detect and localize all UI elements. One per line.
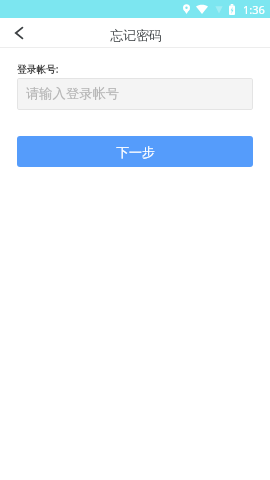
- staticText: 1:36: [243, 2, 265, 17]
- button[interactable]: 请输入登录帐号: [17, 78, 253, 110]
- staticText: 下一步: [116, 144, 155, 160]
- button[interactable]: Back: [0, 18, 37, 48]
- staticText: 登录帐号:: [17, 63, 59, 76]
- staticText: 忘记密码: [110, 27, 162, 43]
- button[interactable]: 下一步: [17, 136, 253, 167]
- staticText: 请输入登录帐号: [26, 85, 120, 102]
- other: Signal: [215, 4, 223, 14]
